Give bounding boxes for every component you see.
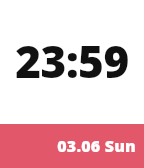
staticText: 23:59 — [15, 31, 129, 91]
button[interactable]: 03.06 Sun — [0, 124, 144, 168]
staticText: 03.06 Sun — [57, 135, 136, 157]
button[interactable]: Current time 23:59 — [0, 0, 144, 124]
